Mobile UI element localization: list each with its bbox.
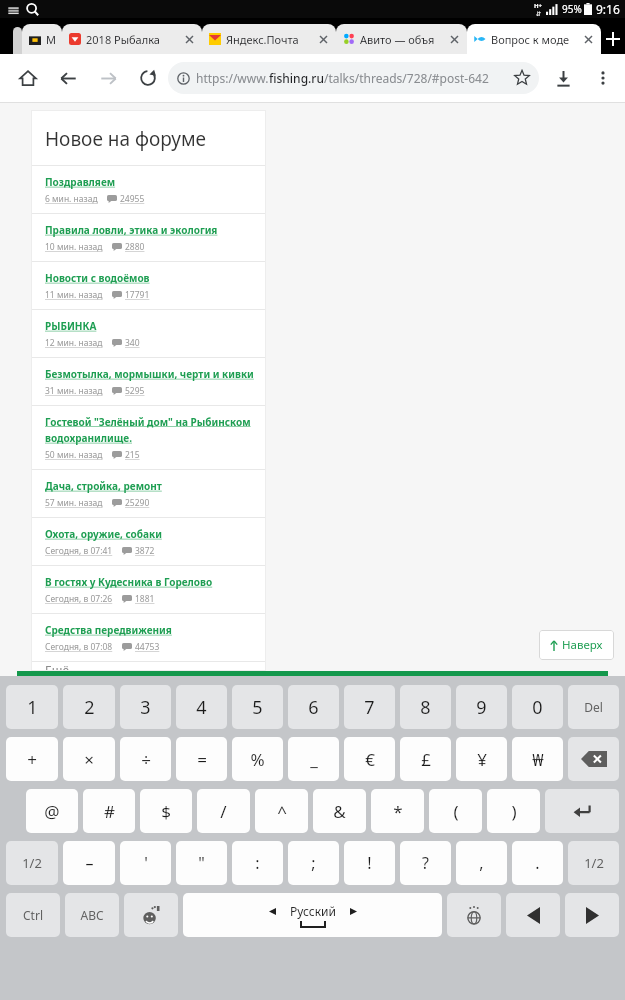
button[interactable]: 3 xyxy=(120,685,171,729)
button[interactable]: = xyxy=(176,737,227,781)
button[interactable]: / xyxy=(197,789,250,833)
button[interactable]: Close tab xyxy=(318,34,329,45)
button[interactable]: Move cursor right xyxy=(565,893,619,937)
button[interactable]: , xyxy=(456,841,507,885)
staticText: ¥ xyxy=(477,748,487,771)
button[interactable]: @ xyxy=(26,789,78,833)
button[interactable]: ) xyxy=(487,789,540,833)
button[interactable]: * xyxy=(371,789,424,833)
button[interactable]: Ctrl xyxy=(6,893,60,937)
button[interactable]: 2018 Рыбалка xyxy=(62,24,202,54)
button[interactable]: Новости с водоёмов xyxy=(31,262,266,309)
button[interactable]: # xyxy=(83,789,135,833)
button[interactable]: € xyxy=(344,737,395,781)
button[interactable]: ( xyxy=(429,789,482,833)
staticText: В гостях у Кудесника в Горелово xyxy=(45,575,213,589)
button[interactable]: Ещё xyxy=(31,662,266,671)
button[interactable]: 8 xyxy=(400,685,451,729)
staticText: Поздравляем xyxy=(45,175,116,189)
button[interactable]: ÷ xyxy=(120,737,171,781)
button[interactable]: More options xyxy=(583,58,623,98)
button[interactable]: _ xyxy=(288,737,339,781)
button[interactable]: 9 xyxy=(456,685,507,729)
button[interactable]: ^ xyxy=(255,789,308,833)
button[interactable]: M xyxy=(22,24,62,54)
button[interactable]: Change language xyxy=(447,893,501,937)
staticText: / xyxy=(220,800,227,823)
button[interactable]: 2 xyxy=(63,685,115,729)
staticText: 5295 xyxy=(125,385,145,397)
button[interactable]: Яндекс.Почта xyxy=(202,24,336,54)
staticText: : xyxy=(255,852,260,874)
button[interactable]: ABC xyxy=(65,893,119,937)
button[interactable]: ? xyxy=(400,841,451,885)
button[interactable]: Forward xyxy=(88,58,128,98)
button[interactable]: Enter xyxy=(545,789,619,833)
button[interactable]: ! xyxy=(344,841,395,885)
staticText: Сегодня, в 07:41 xyxy=(45,545,113,557)
button[interactable]: 5 xyxy=(232,685,283,729)
button[interactable]: × xyxy=(63,737,115,781)
button[interactable]: Close tab xyxy=(583,34,594,45)
button[interactable]: & xyxy=(313,789,366,833)
button[interactable]: Наверх xyxy=(539,630,614,660)
button[interactable]: 4 xyxy=(176,685,227,729)
staticText: 1/2 xyxy=(584,854,604,872)
button[interactable]: Безмотылка, мормышки, черти и кивки xyxy=(31,358,266,405)
button[interactable]: Del xyxy=(568,685,619,729)
button[interactable]: Move cursor left xyxy=(506,893,560,937)
button[interactable]: + xyxy=(6,737,58,781)
button[interactable]: New tab xyxy=(601,24,625,54)
button[interactable]: ¥ xyxy=(456,737,507,781)
button[interactable]: : xyxy=(232,841,283,885)
button[interactable]: 7 xyxy=(344,685,395,729)
button[interactable]: Гостевой "Зелёный дом" на Рыбинском водо… xyxy=(31,406,266,469)
staticText: _ xyxy=(310,748,318,771)
button[interactable]: Вопрос к моде xyxy=(467,24,601,54)
staticText: 1/2 xyxy=(22,854,42,872)
button[interactable]: % xyxy=(232,737,283,781)
button[interactable]: Emoji xyxy=(124,893,178,937)
button[interactable]: В гостях у Кудесника в Горелово xyxy=(31,566,266,613)
button[interactable]: – xyxy=(63,841,115,885)
button[interactable]: $ xyxy=(140,789,192,833)
button[interactable]: Авито — объя xyxy=(336,24,467,54)
button[interactable]: Средства передвижения xyxy=(31,614,266,661)
button[interactable]: https://www. xyxy=(168,62,539,94)
button[interactable]: Space xyxy=(183,893,442,937)
button[interactable]: 6 xyxy=(288,685,339,729)
button[interactable]: £ xyxy=(400,737,451,781)
staticText: @ xyxy=(44,800,60,823)
staticText: , xyxy=(479,852,484,874)
staticText: Охота, оружие, собаки xyxy=(45,527,162,541)
button[interactable]: Bookmark xyxy=(514,70,530,86)
button[interactable]: Дача, стройка, ремонт xyxy=(31,470,266,517)
staticText: fishing.ru xyxy=(269,70,324,86)
button[interactable]: " xyxy=(176,841,227,885)
button[interactable]: Close tab xyxy=(449,34,460,45)
button[interactable]: Поздравляем xyxy=(31,166,266,213)
staticText: ( xyxy=(453,800,459,823)
staticText: 1 xyxy=(27,695,38,720)
button[interactable]: . xyxy=(512,841,563,885)
button[interactable]: 1/2 xyxy=(6,841,58,885)
button[interactable]: Close tab xyxy=(184,34,195,45)
staticText: " xyxy=(198,852,205,874)
button[interactable]: Правила ловли, этика и экология xyxy=(31,214,266,261)
button[interactable]: ₩ xyxy=(512,737,563,781)
button[interactable]: Reload xyxy=(128,58,168,98)
button[interactable]: ; xyxy=(288,841,339,885)
button[interactable]: РЫБИНКА xyxy=(31,310,266,357)
button[interactable]: Download xyxy=(543,58,583,98)
staticText: £ xyxy=(421,748,431,771)
staticText: 2018 Рыбалка xyxy=(86,32,182,47)
button[interactable]: 0 xyxy=(512,685,563,729)
button[interactable]: Back xyxy=(48,58,88,98)
button[interactable]: Home xyxy=(8,58,48,98)
button[interactable]: Охота, оружие, собаки xyxy=(31,518,266,565)
button[interactable]: 1 xyxy=(6,685,58,729)
staticText: 7 xyxy=(364,695,375,720)
button[interactable]: 1/2 xyxy=(568,841,619,885)
button[interactable]: ' xyxy=(120,841,171,885)
button[interactable]: Backspace xyxy=(568,737,619,781)
